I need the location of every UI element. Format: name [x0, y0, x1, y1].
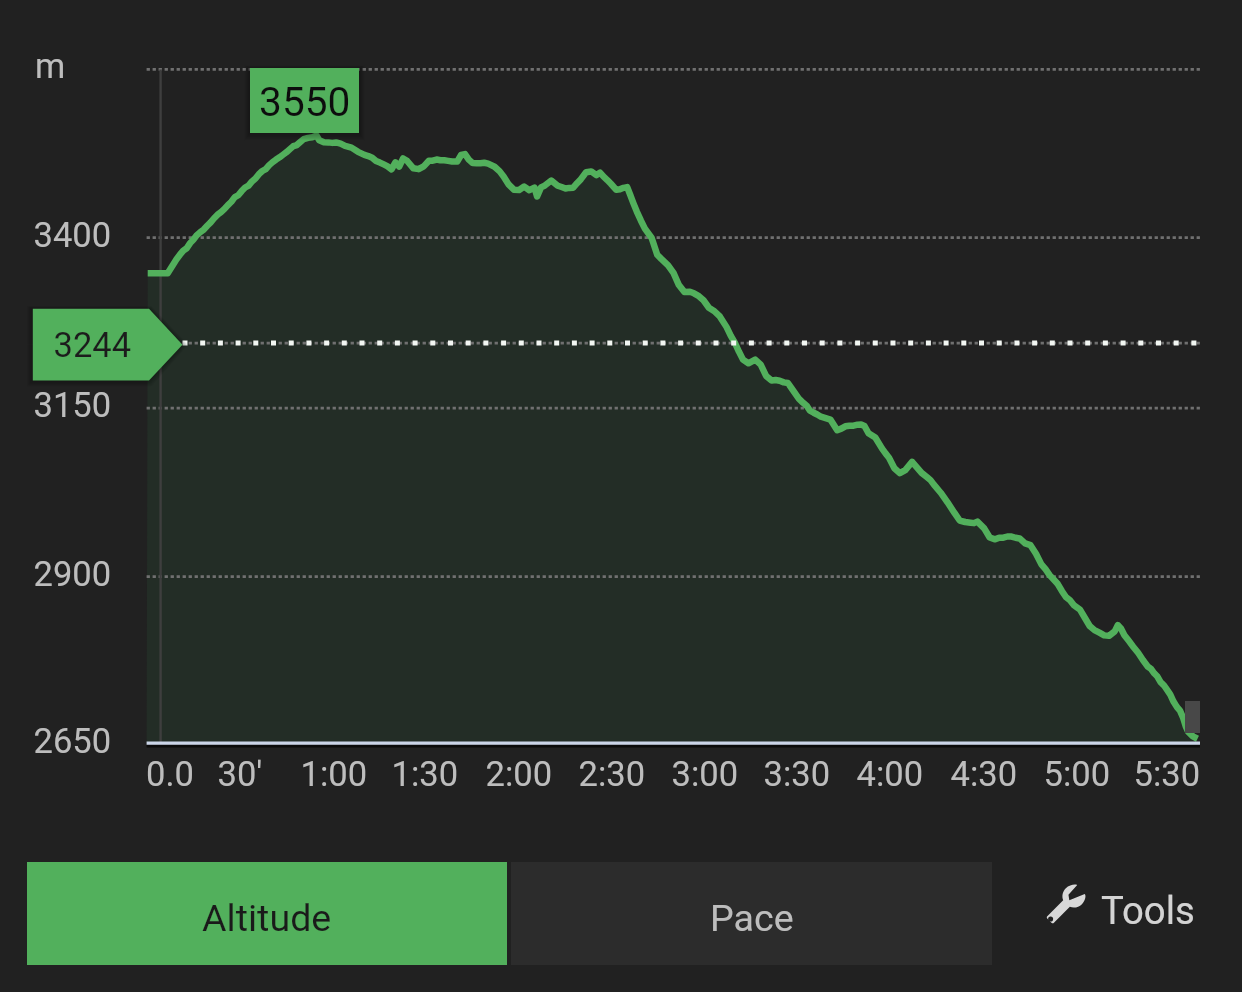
- button[interactable]: Tools: [1020, 862, 1220, 965]
- other: Tools: [1045, 883, 1087, 925]
- staticText: Tools: [1101, 888, 1195, 933]
- button[interactable]: Pace: [511, 862, 992, 965]
- staticText: Altitude: [202, 896, 332, 940]
- staticText: Pace: [710, 896, 794, 940]
- button[interactable]: Altitude: [27, 862, 507, 965]
